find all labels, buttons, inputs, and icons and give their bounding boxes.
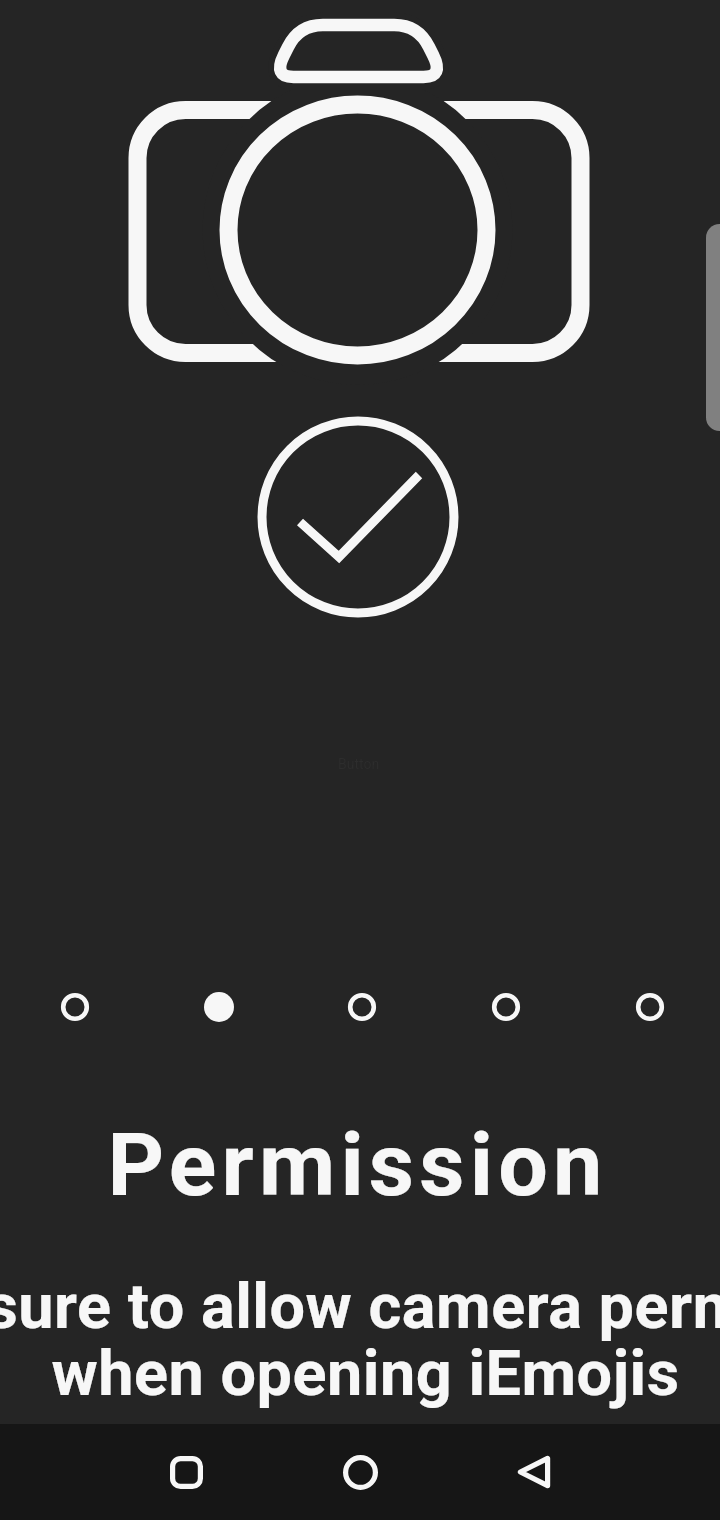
button[interactable]: Page 1 <box>39 971 111 1043</box>
staticText: Permission <box>107 1113 608 1216</box>
staticText: when opening iEmojis <box>51 1337 680 1411</box>
button[interactable]: Page 5 <box>614 971 686 1043</box>
button[interactable]: Recent apps <box>138 1424 234 1520</box>
staticText: Make sure to allow camera permission <box>0 1270 720 1344</box>
button[interactable]: Page 4 <box>470 971 542 1043</box>
button[interactable]: Page 3 <box>326 971 398 1043</box>
button[interactable]: Home <box>312 1424 408 1520</box>
button[interactable]: Back <box>486 1424 582 1520</box>
button[interactable]: Page 2 <box>183 971 255 1043</box>
